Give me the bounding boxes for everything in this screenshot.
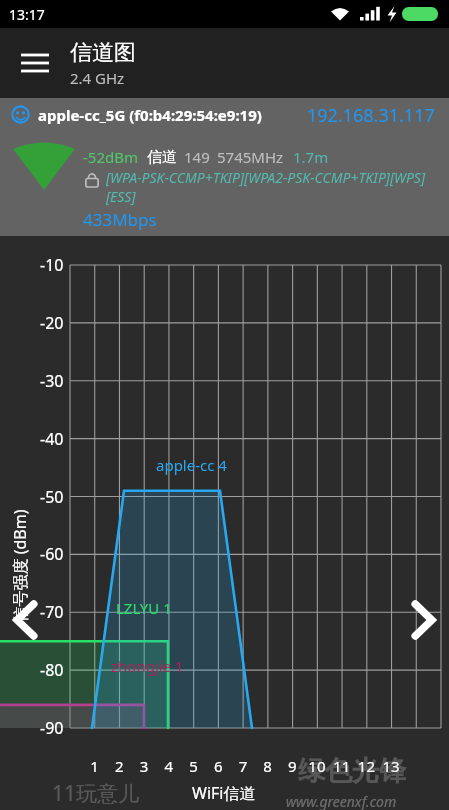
- staticText: apple-cc_5G (f0:b4:29:54:e9:19): [38, 105, 262, 125]
- staticText: 5745MHz: [217, 147, 284, 167]
- staticText: apple-cc 4: [156, 455, 227, 475]
- staticText: zhongjie 1: [111, 656, 184, 676]
- staticText: 2.4 GHz: [70, 68, 125, 88]
- staticText: 信道: [147, 148, 177, 167]
- staticText: 13:17: [9, 5, 45, 24]
- staticText: [WPA-PSK-CCMP+TKIP][WPA2-PSK-CCMP+TKIP][…: [106, 168, 436, 206]
- staticText: 433Mbps: [83, 208, 157, 231]
- staticText: 绿色光锋: [298, 754, 406, 788]
- staticText: 11玩意儿: [52, 779, 140, 808]
- staticText: 192.168.31.117: [307, 103, 443, 128]
- button[interactable]: Previous band: [2, 588, 50, 652]
- button[interactable]: Next band: [399, 588, 447, 652]
- staticText: LZLYU 1: [116, 598, 172, 618]
- staticText: 1.7m: [293, 147, 329, 167]
- button[interactable]: Open navigation drawer: [0, 28, 70, 98]
- staticText: 信道图: [70, 39, 136, 67]
- staticText: 149: [184, 147, 210, 167]
- staticText: -52dBm: [83, 147, 138, 167]
- staticText: www.greenxf.com: [286, 792, 397, 810]
